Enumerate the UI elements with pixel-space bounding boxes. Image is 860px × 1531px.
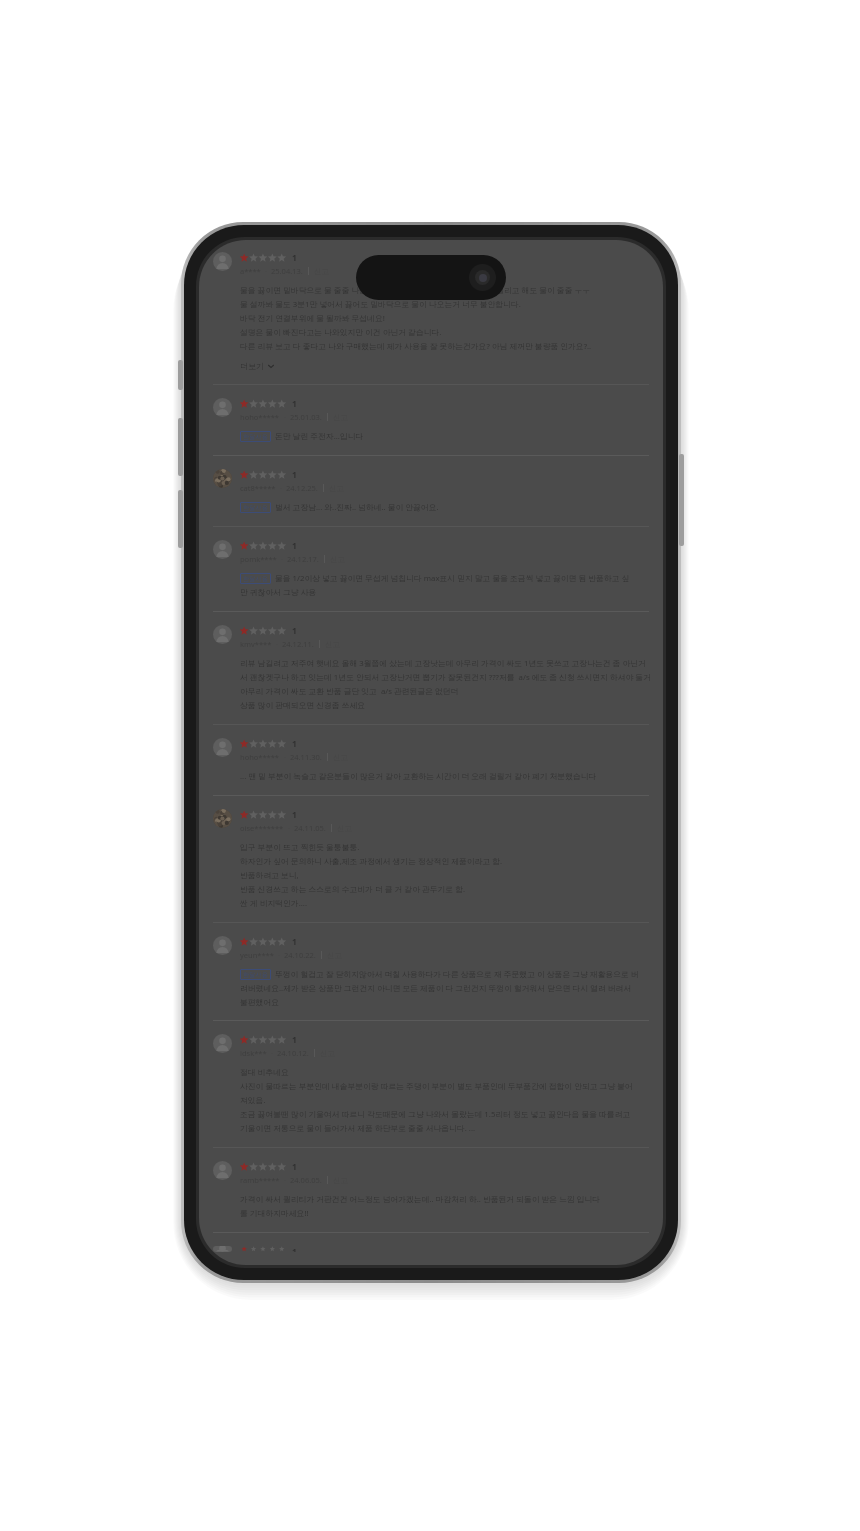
- staticText: 1: [292, 469, 297, 481]
- staticText: 만 귀찮아서 그냥 사용: [240, 587, 317, 598]
- staticText: 아무리 가격이 싸도 교환 반품 글단 잇고 a/s 관련된글은 없던더: [240, 686, 459, 697]
- staticText: 1: [292, 936, 297, 948]
- staticText: 불편했어요: [240, 997, 279, 1007]
- button[interactable]: Reviewer profile: [213, 469, 232, 488]
- button[interactable]: Reviewer profile: [213, 252, 232, 271]
- button[interactable]: Reviewer profile: [213, 1161, 232, 1180]
- button[interactable]: Reviewer profile: [199, 923, 663, 1020]
- button[interactable]: Reviewer profile: [213, 540, 232, 559]
- button[interactable]: 더보기: [240, 361, 275, 371]
- button[interactable]: Reviewer profile: [213, 1034, 232, 1053]
- button[interactable]: Reviewer profile: [199, 1021, 663, 1147]
- staticText: 다른 리뷰 보고 다 좋다고 나와 구매했는데 제가 사용을 잘 못하는건가요?…: [240, 341, 592, 352]
- staticText: 물을 끓이면 밑바닥으로 물 줄줄 나옵니다 물을 많이 넣어서 그러라고 해서…: [240, 285, 591, 296]
- staticText: 한달사용: [243, 504, 268, 512]
- staticText: 1: [292, 1246, 297, 1252]
- staticText: 한달사용: [243, 575, 268, 583]
- staticText: 1: [292, 252, 297, 264]
- button[interactable]: Reviewer profile: [213, 936, 232, 955]
- staticText: 싼 게 비지떡인가....: [240, 898, 307, 909]
- staticText: 1: [292, 809, 297, 821]
- staticText: 사진이 물따르는 부분인데 내솥부분이랑 따르는 주댕이 부분이 별도 부품인데…: [240, 1081, 633, 1092]
- staticText: 1: [292, 1161, 297, 1173]
- staticText: 기울이면 저통으로 물이 들어가서 제품 하단부로 줄줄 서나옵니다. ...: [240, 1123, 476, 1134]
- button[interactable]: Reviewer profile: [213, 809, 232, 828]
- button[interactable]: Reviewer profile: [213, 398, 232, 417]
- staticText: 입구 부분이 뜨고 찍힌듯 울퉁불퉁.: [240, 842, 360, 853]
- staticText: 1: [292, 625, 297, 637]
- button[interactable]: Reviewer profile: [199, 725, 663, 795]
- staticText: 리뷰 남길려고 저주여 햇네요 올해 3월쯤에 샀는데 고장낫는데 아무리 가격…: [240, 658, 651, 669]
- button[interactable]: Reviewer profile: [199, 1148, 663, 1232]
- staticText: 상품 많이 판매되오면 신경좀 쓰세요: [240, 700, 366, 711]
- staticText: 바닥 전기 연결부위에 물 될까봐 무섭네요!: [240, 313, 385, 324]
- button[interactable]: Reviewer profile: [199, 385, 663, 455]
- button[interactable]: Reviewer profile: [199, 612, 663, 724]
- staticText: yeun****: [240, 950, 274, 960]
- staticText: 1: [292, 1034, 297, 1046]
- button[interactable]: Reviewer profile: [199, 1233, 663, 1265]
- button[interactable]: Reviewer profile: [199, 240, 663, 384]
- staticText: idsk***: [240, 1048, 267, 1058]
- button[interactable]: Reviewer profile: [199, 456, 663, 526]
- staticText: 서 괜찮겟구나 하고 잇는데 1년도 안되서 고장난거면 뽑기가 잘못된건지 ?…: [240, 672, 651, 683]
- staticText: 1: [292, 738, 297, 750]
- staticText: 가격이 싸서 퀄리티가 거판건건 어느정도 넘어가겠는데.. 마감처리 하.. …: [240, 1194, 601, 1205]
- staticText: 1: [292, 540, 297, 552]
- staticText: 려버렸네요..제가 받은 상품만 그런건지 아니면 모든 제품이 다 그런건지 …: [240, 983, 632, 994]
- staticText: 벌서 고장남... 와..진짜.. 넘하네.. 물이 안끓어요.: [275, 502, 439, 513]
- button[interactable]: Reviewer profile: [213, 738, 232, 757]
- staticText: 져있음.: [240, 1095, 266, 1106]
- staticText: 물을 1/2이상 넣고 끓이면 무섭게 넘칩니다 max표시 믿지 말고 물을 …: [275, 573, 630, 584]
- staticText: 한달사용: [243, 433, 268, 441]
- staticText: 하자인가 싶어 문의하니 사출,제조 과정에서 생기는 정상적인 제품이라고 함…: [240, 856, 503, 867]
- staticText: 반품 신경쓰고 하는 스스로의 수고비가 더 클 거 같아 관두기로 함.: [240, 884, 466, 895]
- staticText: 물 설까봐 물도 3분1만 넣어서 끓어도 밑바닥으로 물이 나오는거 너무 불…: [240, 299, 521, 310]
- button[interactable]: Reviewer profile: [213, 1246, 232, 1252]
- staticText: 더보기: [240, 361, 264, 371]
- staticText: 설명은 물이 빠진다고는 나와있지만 이건 아닌거 같습니다.: [240, 327, 442, 338]
- button[interactable]: Reviewer profile: [199, 527, 663, 611]
- button[interactable]: Reviewer profile: [199, 796, 663, 922]
- staticText: 절대 비추네요: [240, 1067, 289, 1078]
- staticText: 돈만 날린 주전자...입니다: [275, 431, 364, 442]
- button[interactable]: Reviewer profile: [213, 625, 232, 644]
